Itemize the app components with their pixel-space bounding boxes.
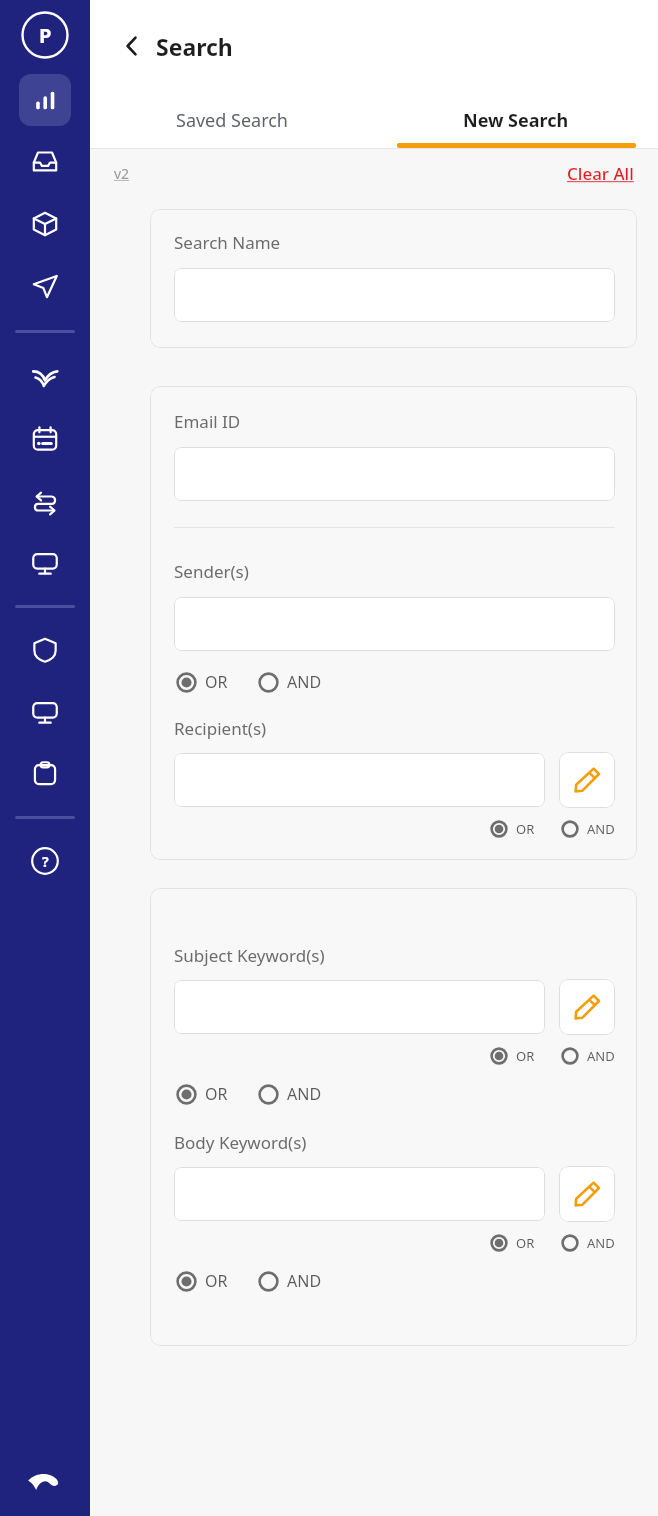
button[interactable] <box>174 753 545 807</box>
button[interactable]: AND <box>258 1270 322 1292</box>
button[interactable]: AND <box>258 671 322 693</box>
button[interactable]: Support <box>19 1456 71 1508</box>
button[interactable]: Packages <box>19 198 71 250</box>
button[interactable] <box>174 447 615 501</box>
button[interactable] <box>174 268 615 322</box>
button[interactable]: Saved Search <box>90 92 374 148</box>
staticText: AND <box>287 1083 322 1105</box>
button[interactable]: New Search <box>374 92 658 148</box>
button[interactable]: Edit <box>559 979 615 1035</box>
button[interactable]: Dashboard <box>19 74 71 126</box>
staticText: Email ID <box>174 410 241 433</box>
staticText: OR <box>205 1083 228 1105</box>
button[interactable]: AND <box>561 1047 615 1065</box>
button[interactable]: Profile <box>21 11 69 59</box>
staticText: Recipient(s) <box>174 717 267 740</box>
staticText: AND <box>287 1270 322 1292</box>
button[interactable]: OR <box>490 1047 535 1065</box>
button[interactable]: Send <box>19 260 71 312</box>
button[interactable]: v2 <box>114 164 130 183</box>
button[interactable]: AND <box>561 1234 615 1252</box>
button[interactable]: Monitor <box>19 537 71 589</box>
staticText: New Search <box>463 108 569 133</box>
staticText: OR <box>516 1234 535 1252</box>
staticText: Search Name <box>174 231 281 254</box>
button[interactable]: Security <box>19 624 71 676</box>
button[interactable]: AND <box>258 1083 322 1105</box>
button[interactable]: Help <box>19 835 71 887</box>
staticText: Body Keyword(s) <box>174 1131 307 1154</box>
staticText: AND <box>587 1047 615 1065</box>
staticText: OR <box>516 1047 535 1065</box>
button[interactable]: Feeds <box>19 351 71 403</box>
button[interactable] <box>174 980 545 1034</box>
staticText: AND <box>587 820 615 838</box>
button[interactable]: Calendar <box>19 413 71 465</box>
button[interactable]: OR <box>176 1083 228 1105</box>
button[interactable]: Edit <box>559 1166 615 1222</box>
button[interactable]: OR <box>490 1234 535 1252</box>
staticText: OR <box>516 820 535 838</box>
button[interactable]: OR <box>176 671 228 693</box>
button[interactable]: Sync <box>19 475 71 527</box>
button[interactable]: Reports <box>19 748 71 800</box>
staticText: OR <box>205 1270 228 1292</box>
button[interactable]: Inbox <box>19 136 71 188</box>
button[interactable]: OR <box>490 820 535 838</box>
staticText: Search <box>156 31 233 62</box>
staticText: Sender(s) <box>174 560 249 583</box>
staticText: ? <box>42 852 49 871</box>
button[interactable]: Back <box>112 26 152 66</box>
button[interactable] <box>174 597 615 651</box>
staticText: OR <box>205 671 228 693</box>
button[interactable]: Edit <box>559 752 615 808</box>
staticText: Saved Search <box>176 108 288 133</box>
staticText: Subject Keyword(s) <box>174 944 325 967</box>
staticText: AND <box>587 1234 615 1252</box>
button[interactable]: AND <box>561 820 615 838</box>
button[interactable]: Clear All <box>567 162 634 185</box>
button[interactable]: OR <box>176 1270 228 1292</box>
staticText: AND <box>287 671 322 693</box>
button[interactable] <box>174 1167 545 1221</box>
staticText: P <box>39 22 52 49</box>
button[interactable]: Display <box>19 686 71 738</box>
